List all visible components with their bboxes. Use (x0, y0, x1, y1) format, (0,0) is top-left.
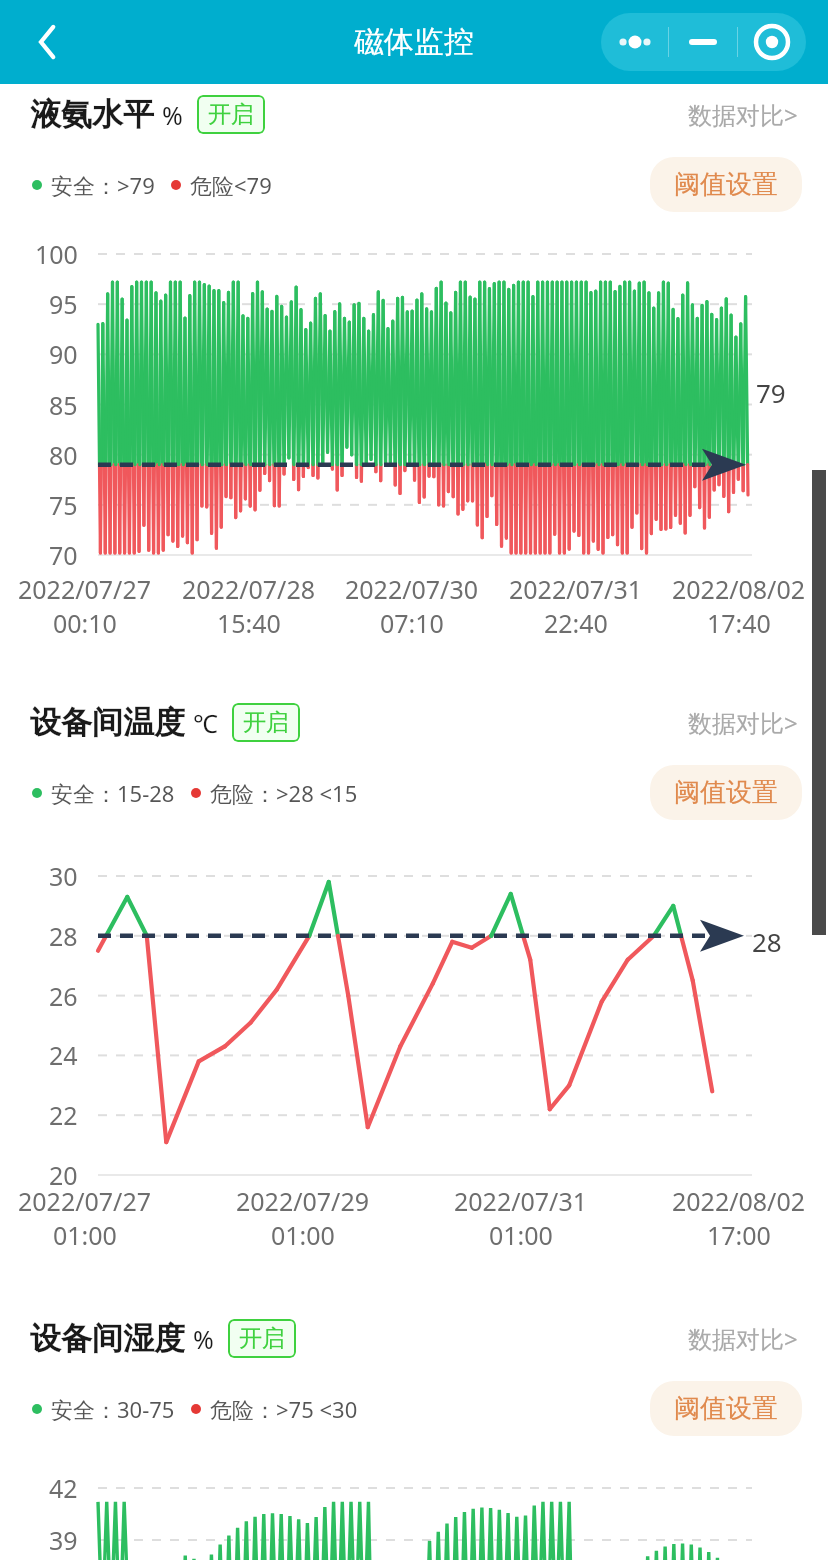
staticText: 阈值设置 (674, 168, 778, 201)
staticText: 液氨水平 (30, 95, 154, 134)
staticText: 80 (49, 438, 78, 472)
staticText: 危险：>75 <30 (210, 1394, 358, 1424)
staticText: 07:10 (380, 606, 444, 640)
staticText: 磁体监控 (354, 23, 474, 61)
staticText: 26 (49, 979, 78, 1013)
staticText: 30 (49, 859, 78, 893)
staticText: 85 (49, 388, 78, 422)
button[interactable]: Minimize (669, 13, 737, 71)
staticText: 设备间湿度 (30, 1319, 185, 1358)
staticText: 17:40 (707, 606, 771, 640)
staticText: 42 (49, 1471, 78, 1505)
button[interactable]: 数据对比> (684, 702, 802, 743)
staticText: 开启 (243, 708, 289, 737)
button[interactable]: 数据对比> (684, 94, 802, 135)
staticText: 24 (49, 1038, 78, 1072)
staticText: % (162, 98, 183, 132)
button[interactable]: 阈值设置 (650, 157, 802, 212)
staticText: 2022/07/27 (18, 1184, 152, 1218)
staticText: 2022/07/30 (345, 572, 479, 606)
staticText: 阈值设置 (674, 1392, 778, 1425)
button[interactable]: 数据对比> (684, 1318, 802, 1359)
staticText: 危险：>28 <15 (210, 778, 358, 808)
button[interactable]: 阈值设置 (650, 1381, 802, 1436)
staticText: 75 (49, 488, 78, 522)
staticText: 90 (49, 337, 78, 371)
staticText: 2022/07/28 (182, 572, 316, 606)
button[interactable]: Close (738, 13, 806, 71)
staticText: % (193, 1322, 214, 1356)
staticText: 15:40 (217, 606, 281, 640)
staticText: 20 (49, 1158, 78, 1192)
staticText: 数据对比> (688, 1322, 798, 1355)
staticText: ℃ (193, 706, 218, 740)
staticText: 设备间温度 (30, 703, 185, 742)
staticText: 2022/07/27 (18, 572, 152, 606)
staticText: 39 (49, 1523, 78, 1557)
staticText: 数据对比> (688, 98, 798, 131)
button[interactable]: Back (18, 14, 74, 70)
staticText: 95 (49, 287, 78, 321)
staticText: 01:00 (271, 1218, 335, 1252)
staticText: 100 (35, 237, 78, 271)
staticText: 数据对比> (688, 706, 798, 739)
staticText: 阈值设置 (674, 776, 778, 809)
staticText: 安全：>79 (51, 170, 155, 200)
button[interactable]: 开启 (228, 1319, 296, 1358)
staticText: 01:00 (53, 1218, 117, 1252)
button[interactable]: More options (601, 13, 668, 71)
staticText: 2022/08/02 (672, 572, 806, 606)
button[interactable]: 阈值设置 (650, 765, 802, 820)
staticText: 危险<79 (190, 170, 272, 200)
staticText: 00:10 (53, 606, 117, 640)
staticText: 01:00 (489, 1218, 553, 1252)
staticText: 2022/07/29 (236, 1184, 370, 1218)
staticText: 79 (756, 375, 786, 410)
staticText: 17:00 (707, 1218, 771, 1252)
staticText: 安全：30-75 (51, 1394, 175, 1424)
button[interactable]: 开启 (232, 703, 300, 742)
staticText: 28 (752, 924, 782, 959)
staticText: 2022/07/31 (509, 572, 643, 606)
staticText: 28 (49, 919, 78, 953)
staticText: 开启 (239, 1324, 285, 1353)
staticText: 70 (49, 538, 78, 572)
staticText: 2022/07/31 (454, 1184, 588, 1218)
staticText: 安全：15-28 (51, 778, 175, 808)
staticText: 22:40 (544, 606, 608, 640)
staticText: 开启 (208, 100, 254, 129)
button[interactable]: 开启 (197, 95, 265, 134)
staticText: 2022/08/02 (672, 1184, 806, 1218)
staticText: 22 (49, 1098, 78, 1132)
